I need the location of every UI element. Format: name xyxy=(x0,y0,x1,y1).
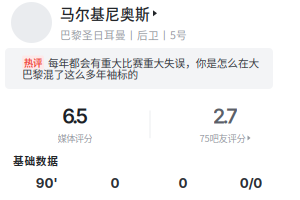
staticText: 巴黎混了这么多年袖标的 xyxy=(22,66,138,81)
staticText: 0 xyxy=(178,175,187,191)
staticText: 马尔基尼奥斯 xyxy=(60,3,150,24)
staticText: 75吧友评分 xyxy=(199,131,245,145)
staticText: 巴黎圣日耳曼丨后卫丨5号 xyxy=(60,27,187,42)
staticText: 6.5 xyxy=(62,104,88,128)
staticText: 媒体评分 xyxy=(58,131,92,145)
staticText: 0/0 xyxy=(240,175,262,191)
staticText: 0 xyxy=(110,175,119,191)
staticText: 每年都会有重大比赛重大失误，你是怎么在大 xyxy=(48,55,259,70)
button[interactable]: 马尔基尼奥斯 xyxy=(0,0,300,45)
staticText: 基础数据 xyxy=(13,153,58,168)
staticText: 90' xyxy=(36,175,58,191)
staticText: 热评 xyxy=(24,56,42,69)
staticText: 2.7 xyxy=(213,104,237,128)
